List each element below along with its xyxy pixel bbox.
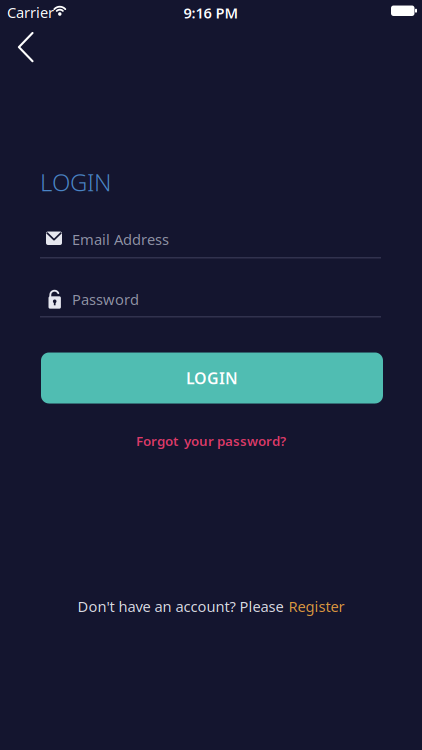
button[interactable]: Register	[288, 596, 344, 616]
staticText: Forgot your password?	[136, 432, 286, 450]
button[interactable]	[18, 31, 34, 62]
staticText: Carrier	[7, 2, 54, 22]
staticText: Password	[72, 289, 139, 309]
staticText: Register	[288, 596, 344, 616]
staticText: Email Address	[72, 229, 169, 249]
button[interactable]: Forgot your password?	[136, 432, 286, 450]
staticText: LOGIN	[40, 166, 111, 198]
staticText: Don't have an account? Please	[77, 596, 283, 616]
staticText: LOGIN	[186, 367, 238, 389]
staticText: 9:16 PM	[183, 3, 238, 22]
button[interactable]: LOGIN	[41, 352, 383, 403]
